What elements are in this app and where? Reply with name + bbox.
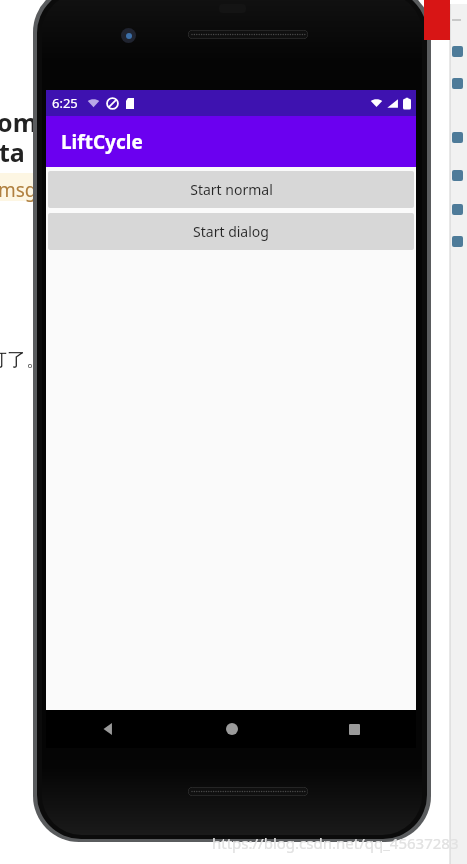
staticText: https://blog.csdn.net/qq_45637283 [212, 833, 459, 853]
staticText: msg [0, 177, 37, 203]
button[interactable]: Back [46, 710, 170, 748]
button[interactable]: Start dialog [48, 213, 414, 250]
staticText: ta [0, 135, 25, 169]
staticText: 订了。 [0, 348, 45, 372]
staticText: Start dialog [193, 222, 269, 241]
staticText: LiftCycle [61, 129, 143, 155]
staticText: 6:25 [52, 94, 78, 112]
staticText: Start normal [190, 180, 273, 199]
button[interactable]: Start normal [48, 171, 414, 208]
button[interactable]: Home [170, 710, 293, 748]
staticText: om [0, 105, 38, 139]
button[interactable]: Recent apps [293, 710, 416, 748]
